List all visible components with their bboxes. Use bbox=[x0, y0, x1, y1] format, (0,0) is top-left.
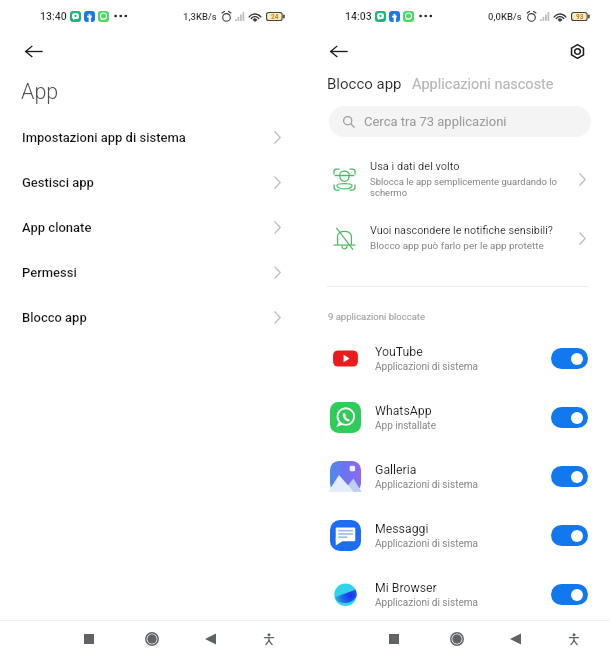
button[interactable]: Home bbox=[137, 624, 167, 654]
staticText: Galleria bbox=[375, 463, 417, 477]
staticText: 13:40 bbox=[40, 10, 67, 22]
button[interactable]: Back bbox=[500, 624, 530, 654]
button[interactable]: Accessibility bbox=[254, 624, 284, 654]
button[interactable]: Blocco Galleria bbox=[551, 466, 588, 487]
staticText: Blocco app può farlo per le app protette bbox=[370, 240, 544, 252]
staticText: Permessi bbox=[22, 265, 77, 280]
button[interactable]: YouTube bbox=[305, 329, 610, 388]
staticText: Applicazioni di sistema bbox=[375, 538, 478, 550]
button[interactable]: Accessibility bbox=[559, 624, 589, 654]
staticText: App bbox=[21, 79, 59, 104]
staticText: Vuoi nascondere le notifiche sensibili? bbox=[370, 224, 553, 237]
staticText: 9 applicazioni bloccate bbox=[328, 311, 425, 322]
button[interactable]: Home bbox=[442, 624, 472, 654]
button[interactable]: Blocco app bbox=[327, 75, 402, 93]
button[interactable]: Impostazioni app di sistema bbox=[0, 115, 305, 160]
staticText: Mi Browser bbox=[375, 581, 437, 595]
staticText: 0,0KB/s bbox=[488, 11, 522, 22]
staticText: Impostazioni app di sistema bbox=[22, 130, 186, 145]
button[interactable]: Mi Browser bbox=[305, 565, 610, 624]
staticText: Blocco app bbox=[22, 310, 87, 325]
staticText: Gestisci app bbox=[22, 175, 94, 190]
button[interactable]: App clonate bbox=[0, 205, 305, 250]
staticText: Usa i dati del volto bbox=[370, 160, 460, 173]
staticText: 24 bbox=[271, 13, 279, 21]
button[interactable]: Blocco app bbox=[0, 295, 305, 340]
button[interactable]: Gestisci app bbox=[0, 160, 305, 205]
button[interactable]: WhatsApp bbox=[305, 388, 610, 447]
button[interactable]: Back bbox=[324, 37, 352, 65]
staticText: 1,3KB/s bbox=[183, 11, 217, 22]
staticText: Applicazioni di sistema bbox=[375, 361, 478, 373]
button[interactable]: Blocco YouTube bbox=[551, 348, 588, 369]
staticText: WhatsApp bbox=[375, 404, 432, 418]
staticText: Blocco app bbox=[327, 75, 402, 93]
button[interactable]: Blocco WhatsApp bbox=[551, 407, 588, 428]
button[interactable]: Messaggi bbox=[305, 506, 610, 565]
button[interactable]: Vuoi nascondere le notifiche sensibili? bbox=[305, 213, 610, 263]
button[interactable]: Cerca tra 73 applicazioni bbox=[329, 106, 591, 137]
button[interactable]: Blocco Messaggi bbox=[551, 525, 588, 546]
button[interactable]: Galleria bbox=[305, 447, 610, 506]
button[interactable]: Settings bbox=[563, 37, 591, 65]
button[interactable]: Blocco Mi Browser bbox=[551, 584, 588, 605]
staticText: 14:03 bbox=[345, 10, 372, 22]
button[interactable]: Recents bbox=[74, 624, 104, 654]
staticText: Applicazioni di sistema bbox=[375, 479, 478, 491]
button[interactable]: Recents bbox=[379, 624, 409, 654]
button[interactable]: Permessi bbox=[0, 250, 305, 295]
staticText: Sblocca le app semplicemente guardando l… bbox=[370, 176, 573, 198]
staticText: Cerca tra 73 applicazioni bbox=[364, 114, 507, 129]
staticText: Applicazioni di sistema bbox=[375, 597, 478, 609]
staticText: App clonate bbox=[22, 220, 92, 235]
staticText: App installate bbox=[375, 420, 436, 432]
button[interactable]: Usa i dati del volto bbox=[305, 153, 610, 205]
staticText: Applicazioni nascoste bbox=[412, 76, 554, 93]
staticText: YouTube bbox=[375, 345, 423, 359]
button[interactable]: Applicazioni nascoste bbox=[412, 76, 554, 93]
staticText: 93 bbox=[576, 13, 584, 21]
button[interactable]: Back bbox=[195, 624, 225, 654]
staticText: Messaggi bbox=[375, 522, 429, 536]
button[interactable]: Back bbox=[19, 37, 47, 65]
